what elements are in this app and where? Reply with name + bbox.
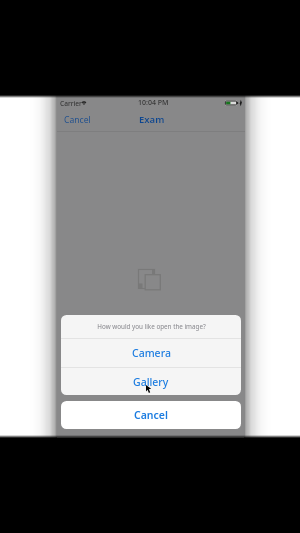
staticText: 10:04 PM [138,98,169,108]
staticText: Cancel [64,114,91,126]
staticText: Gallery [133,375,169,389]
staticText: Camera [132,346,171,360]
button[interactable]: Cancel [57,110,98,130]
staticText: Cancel [134,408,168,422]
staticText: Exam [139,113,165,126]
button[interactable]: Camera [61,339,241,367]
staticText: Carrier [60,99,82,108]
button[interactable]: Gallery [61,368,241,395]
button[interactable]: Cancel [61,401,241,429]
staticText: How would you like open the image? [97,322,206,331]
